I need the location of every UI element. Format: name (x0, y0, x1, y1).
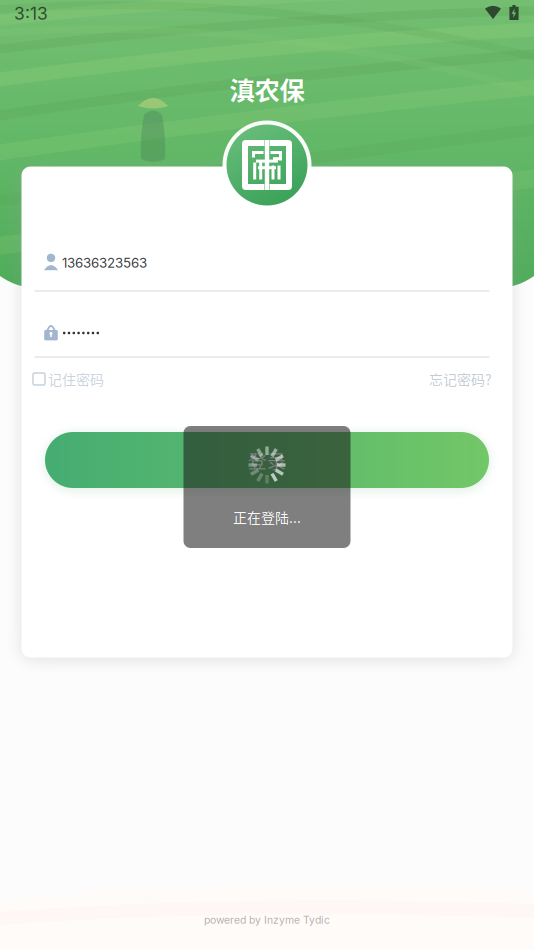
staticText: 登录 (248, 446, 286, 473)
staticText: 滇农保 (229, 71, 304, 107)
staticText: 忘记密码? (429, 369, 492, 389)
staticText: 3:13 (14, 3, 48, 24)
button[interactable]: 忘记密码? (420, 365, 492, 393)
staticText: 13636323563 (62, 255, 147, 271)
staticText: 正在登陆... (233, 507, 301, 527)
staticText: 记住密码 (48, 369, 104, 389)
button[interactable]: 记住密码 (33, 365, 123, 393)
button[interactable]: 登录 (45, 432, 489, 488)
staticText: powered by Inzyme Tydic (204, 914, 330, 926)
